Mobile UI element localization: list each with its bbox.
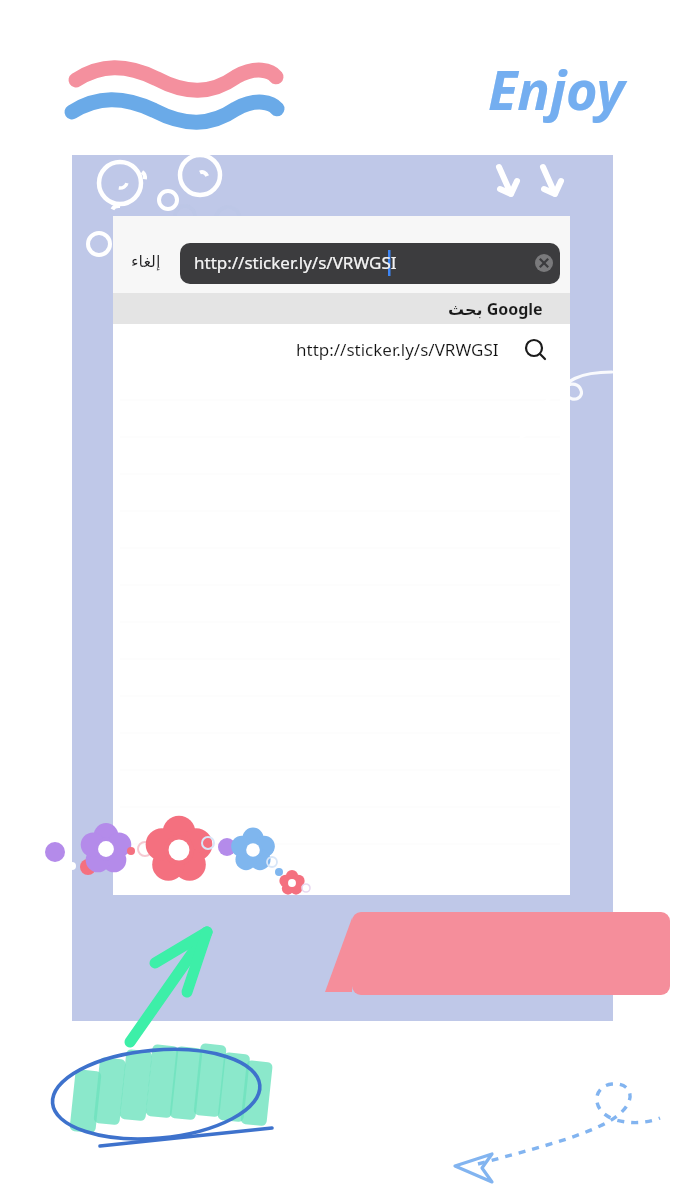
button[interactable]: Sticker browser screenshot xyxy=(0,0,675,1200)
